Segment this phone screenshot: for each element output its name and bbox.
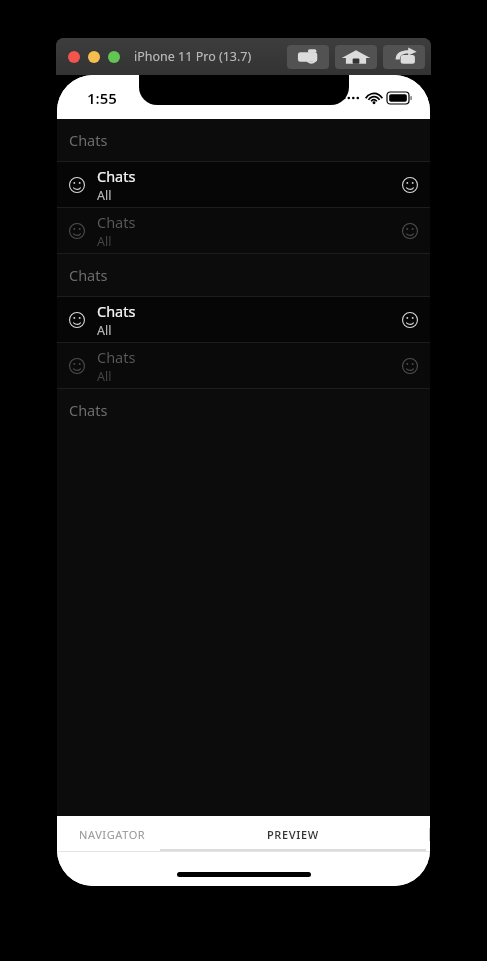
other: Emoji: [402, 312, 418, 328]
other: Emoji: [402, 223, 418, 239]
other: Emoji: [69, 312, 85, 328]
button[interactable]: Chats: [57, 254, 430, 296]
staticText: Chats: [97, 166, 136, 186]
staticText: Chats: [97, 301, 136, 321]
staticText: iPhone 11 Pro (13.7): [134, 48, 252, 65]
staticText: All: [97, 233, 112, 250]
button[interactable]: PREVIEW: [156, 816, 430, 852]
staticText: Chats: [69, 400, 108, 420]
button[interactable]: Zoom: [108, 51, 120, 63]
button[interactable]: Chats: [57, 389, 430, 431]
staticText: Chats: [69, 130, 108, 150]
staticText: Chats: [97, 212, 136, 232]
staticText: All: [97, 187, 112, 204]
button[interactable]: Close: [68, 51, 80, 63]
staticText: Chats: [97, 347, 136, 367]
button[interactable]: NAVIGATOR: [69, 816, 156, 852]
button[interactable]: Chats: [57, 119, 430, 161]
button[interactable]: Minimise: [88, 51, 100, 63]
staticText: NAVIGATOR: [79, 827, 146, 842]
staticText: All: [97, 322, 112, 339]
staticText: All: [97, 368, 112, 385]
other: Emoji: [402, 358, 418, 374]
staticText: Chats: [69, 265, 108, 285]
button[interactable]: Screenshot: [287, 45, 329, 69]
button[interactable]: Home: [335, 45, 377, 69]
staticText: PREVIEW: [267, 827, 319, 842]
button[interactable]: Emoji: [57, 162, 430, 207]
staticText: 1:55: [87, 88, 117, 108]
button[interactable]: Emoji: [57, 297, 430, 342]
button[interactable]: Emoji: [57, 208, 430, 253]
other: Emoji: [69, 358, 85, 374]
other: Emoji: [69, 177, 85, 193]
other: Emoji: [69, 223, 85, 239]
other: Emoji: [402, 177, 418, 193]
button[interactable]: Share: [383, 45, 425, 69]
button[interactable]: Emoji: [57, 343, 430, 388]
